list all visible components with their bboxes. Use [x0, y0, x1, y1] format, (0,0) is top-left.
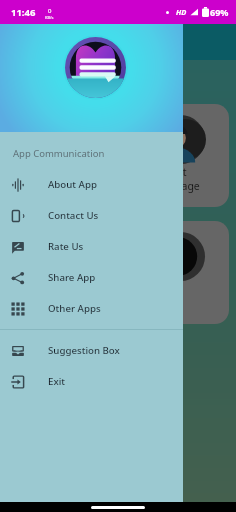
button[interactable]: Other Apps [0, 293, 183, 324]
button[interactable]: Emoji [7, 221, 229, 324]
staticText: Suggestion Box [48, 344, 120, 357]
button[interactable]: Suggestion Box [0, 335, 183, 366]
staticText: Share App [48, 271, 96, 284]
button[interactable]: Secret [7, 104, 229, 207]
button[interactable]: About App [0, 169, 183, 200]
button[interactable]: Rate Us [0, 231, 183, 262]
staticText: Rate Us [48, 240, 84, 253]
staticText: Emoji [156, 282, 184, 296]
button[interactable]: Contact Us [0, 200, 183, 231]
staticText: 11:46 [11, 6, 36, 19]
staticText: KB/s [45, 15, 54, 20]
staticText: Secret [156, 165, 187, 179]
staticText: About App [48, 178, 97, 191]
button[interactable]: Share App [0, 262, 183, 293]
staticText: App Communication [13, 147, 105, 160]
staticText: Contact Us [48, 209, 99, 222]
staticText: 0 [48, 7, 52, 15]
staticText: Exit [48, 375, 65, 388]
button[interactable]: Exit [0, 366, 183, 397]
staticText: Other Apps [48, 302, 101, 315]
staticText: HD [176, 7, 187, 17]
staticText: Message [156, 179, 200, 193]
staticText: 69% [210, 6, 229, 18]
